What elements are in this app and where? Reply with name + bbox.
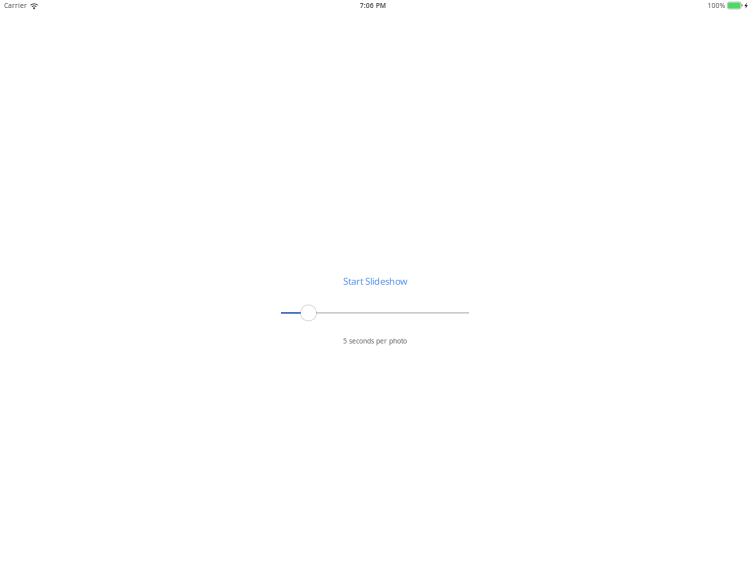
staticText: 5 seconds per photo bbox=[343, 336, 407, 345]
staticText: 100% bbox=[707, 1, 725, 10]
button[interactable]: Seconds per photo bbox=[281, 304, 469, 321]
staticText: Start Slideshow bbox=[343, 275, 407, 287]
button[interactable]: Start Slideshow bbox=[343, 275, 407, 287]
staticText: 7:06 PM bbox=[360, 1, 386, 10]
staticText: Carrier bbox=[4, 1, 27, 10]
